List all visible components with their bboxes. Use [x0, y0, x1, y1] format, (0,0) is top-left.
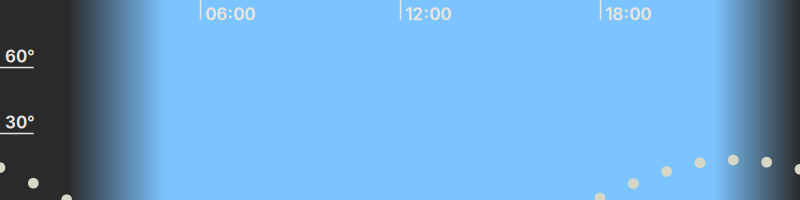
staticText: 60°	[5, 46, 35, 66]
staticText: 12:00	[405, 4, 451, 24]
staticText: 30°	[5, 112, 35, 132]
staticText: 06:00	[205, 4, 255, 24]
staticText: 18:00	[605, 4, 651, 24]
